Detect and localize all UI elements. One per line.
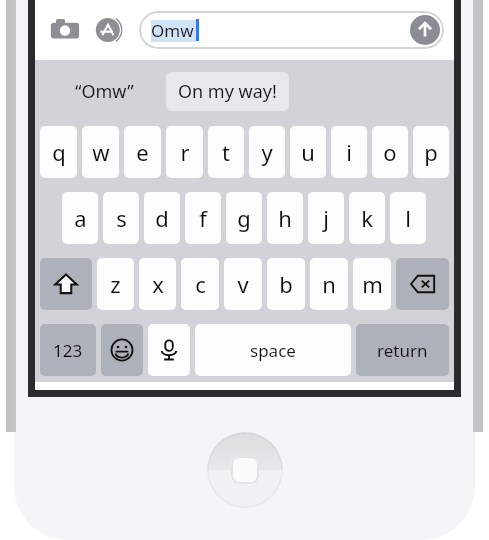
button[interactable]: Dictation <box>148 324 190 376</box>
button[interactable]: r <box>166 126 203 178</box>
staticText: g <box>237 203 251 233</box>
button[interactable]: i <box>331 126 367 178</box>
button[interactable]: q <box>40 126 77 178</box>
staticText: r <box>180 137 190 167</box>
button[interactable]: y <box>249 126 285 178</box>
button[interactable]: Home <box>207 432 283 508</box>
staticText: p <box>424 137 438 167</box>
staticText: u <box>301 137 315 167</box>
button[interactable]: a <box>62 192 98 244</box>
button[interactable]: w <box>82 126 119 178</box>
staticText: On my way! <box>178 79 277 104</box>
staticText: n <box>322 269 336 299</box>
staticText: z <box>110 269 121 299</box>
button[interactable]: o <box>372 126 408 178</box>
staticText: space <box>250 339 296 362</box>
button[interactable]: k <box>349 192 385 244</box>
button[interactable]: “Omw” <box>65 73 144 110</box>
staticText: q <box>52 137 66 167</box>
staticText: m <box>362 269 383 299</box>
button[interactable]: l <box>390 192 426 244</box>
button[interactable]: Shift <box>40 258 92 310</box>
button[interactable]: e <box>124 126 161 178</box>
button[interactable]: Omw <box>139 11 444 49</box>
staticText: x <box>152 269 164 299</box>
button[interactable]: On my way! <box>166 72 289 111</box>
staticText: y <box>261 137 273 167</box>
staticText: w <box>92 137 110 167</box>
button[interactable]: f <box>185 192 221 244</box>
staticText: a <box>74 203 87 233</box>
button[interactable]: s <box>103 192 139 244</box>
button[interactable]: h <box>267 192 303 244</box>
button[interactable]: App Store <box>89 10 129 50</box>
staticText: d <box>155 203 169 233</box>
staticText: e <box>136 137 149 167</box>
staticText: Omw <box>151 19 194 42</box>
button[interactable]: p <box>413 126 449 178</box>
button[interactable]: g <box>226 192 262 244</box>
staticText: i <box>346 137 352 167</box>
staticText: 123 <box>53 339 83 362</box>
staticText: “Omw” <box>75 79 134 104</box>
button[interactable]: Send <box>410 15 440 45</box>
button[interactable]: Backspace <box>396 258 449 310</box>
button[interactable]: c <box>181 258 219 310</box>
button[interactable]: 123 <box>40 324 96 376</box>
button[interactable]: Camera <box>45 10 85 50</box>
staticText: v <box>237 269 249 299</box>
button[interactable]: v <box>224 258 262 310</box>
button[interactable]: t <box>208 126 244 178</box>
staticText: f <box>199 203 207 233</box>
staticText: l <box>405 203 411 233</box>
staticText: h <box>278 203 292 233</box>
staticText: j <box>323 203 329 233</box>
staticText: c <box>195 269 206 299</box>
button[interactable]: u <box>290 126 326 178</box>
button[interactable]: x <box>139 258 176 310</box>
button[interactable]: return <box>356 324 449 376</box>
button[interactable]: m <box>353 258 391 310</box>
button[interactable]: space <box>195 324 351 376</box>
button[interactable]: Emoji <box>101 324 143 376</box>
staticText: t <box>222 137 230 167</box>
button[interactable]: b <box>267 258 305 310</box>
staticText: k <box>361 203 373 233</box>
button[interactable]: d <box>144 192 180 244</box>
staticText: b <box>279 269 293 299</box>
staticText: o <box>383 137 397 167</box>
staticText: s <box>116 203 127 233</box>
button[interactable]: j <box>308 192 344 244</box>
staticText: return <box>377 339 428 362</box>
button[interactable]: z <box>97 258 134 310</box>
button[interactable]: n <box>310 258 348 310</box>
